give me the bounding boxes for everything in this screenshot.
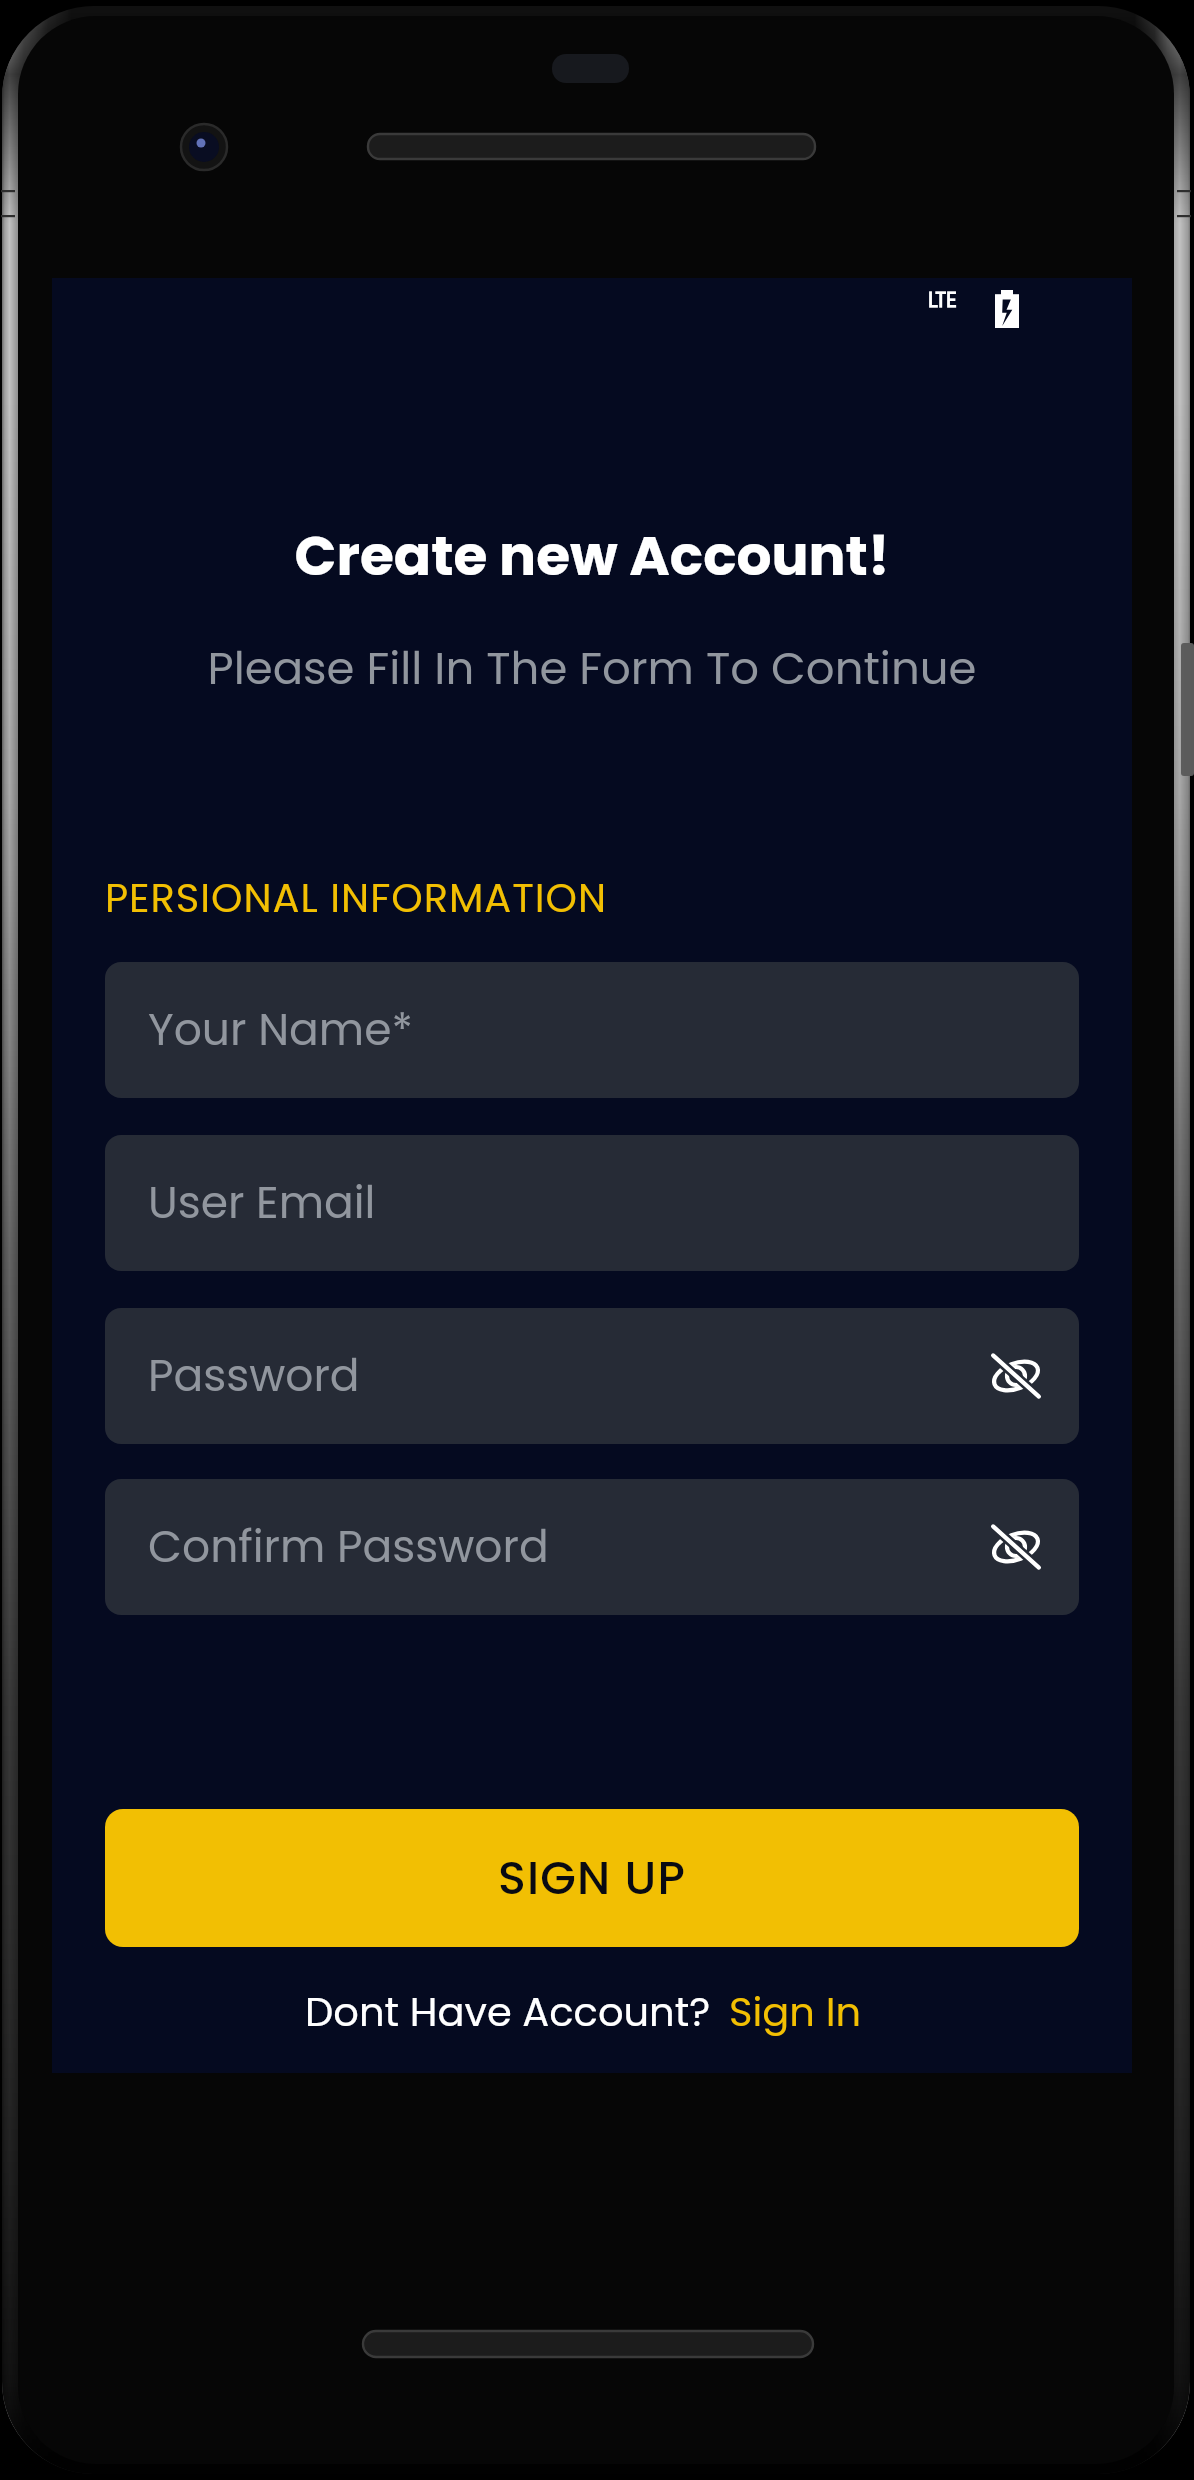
staticText: User Email xyxy=(148,1172,376,1234)
button[interactable]: Confirm Password xyxy=(105,1479,1079,1615)
staticText: Please Fill In The Form To Continue xyxy=(52,637,1132,700)
staticText: Your Name* xyxy=(148,999,413,1061)
button[interactable]: User Email xyxy=(105,1135,1079,1271)
button[interactable]: Toggle password visibility xyxy=(978,1338,1054,1414)
staticText: Confirm Password xyxy=(148,1516,549,1578)
staticText: Create new Account! xyxy=(52,517,1132,594)
staticText: Sign In xyxy=(729,1984,862,2040)
button[interactable]: Toggle password visibility xyxy=(978,1509,1054,1585)
staticText: Password xyxy=(148,1345,360,1407)
button[interactable]: Your Name* xyxy=(105,962,1079,1098)
button[interactable]: Password xyxy=(105,1308,1079,1444)
staticText: LTE xyxy=(928,288,957,313)
staticText: PERSIONAL INFORMATION xyxy=(105,870,608,926)
button[interactable]: SIGN UP xyxy=(105,1809,1079,1947)
button[interactable]: Sign In xyxy=(721,1978,870,2046)
staticText: Dont Have Account? xyxy=(305,1984,711,2040)
staticText: SIGN UP xyxy=(498,1846,687,1910)
